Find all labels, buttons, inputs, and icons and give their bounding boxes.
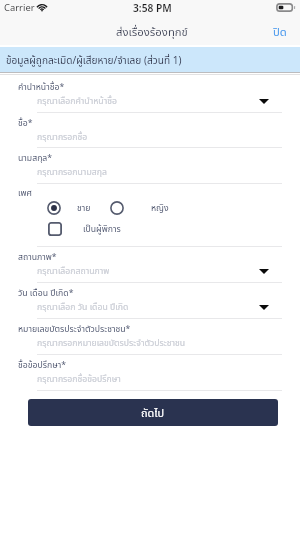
- other: Open picker: [259, 269, 269, 274]
- staticText: วัน เดือน ปีเกิด*: [18, 287, 74, 300]
- button[interactable]: ปิด: [264, 19, 300, 45]
- staticText: กรุณากรอกชื่อ: [37, 131, 88, 144]
- staticText: กรุณากรอกหมายเลขบัตรประจำตัวประชาชน: [37, 337, 186, 350]
- button[interactable]: สถานภาพ*: [0, 246, 300, 282]
- other: Open picker: [259, 305, 269, 310]
- button[interactable]: หญิง: [110, 201, 169, 215]
- button[interactable]: เป็นผู้พิการ: [48, 222, 121, 236]
- staticText: คำนำหน้าชื่อ*: [18, 81, 65, 94]
- staticText: กรุณาเลือก วัน เดือน ปีเกิด: [37, 301, 129, 314]
- button[interactable]: ชาย: [47, 201, 91, 215]
- button[interactable]: วัน เดือน ปีเกิด*: [0, 282, 300, 318]
- staticText: Carrier: [4, 1, 35, 14]
- button[interactable]: ชื่อ*: [0, 112, 300, 148]
- staticText: ชาย: [77, 202, 91, 215]
- staticText: เป็นผู้พิการ: [83, 223, 121, 236]
- other: Battery low: [276, 3, 296, 12]
- staticText: กรุณากรอกนามสกุล: [37, 166, 107, 179]
- staticText: ส่งเรื่องร้องทุกข์: [116, 24, 188, 41]
- button[interactable]: ถัดไป: [28, 399, 278, 426]
- staticText: กรุณาเลือกสถานภาพ: [37, 265, 110, 278]
- button[interactable]: หมายเลขบัตรประจำตัวประชาชน*: [0, 318, 300, 354]
- staticText: ชื่อ*: [18, 117, 33, 130]
- staticText: กรุณากรอกชื่อข้อปรึกษา: [37, 373, 121, 386]
- button[interactable]: นามสกุล*: [0, 147, 300, 183]
- button[interactable]: ชื่อข้อปรึกษา*: [0, 354, 300, 390]
- staticText: หมายเลขบัตรประจำตัวประชาชน*: [18, 323, 131, 336]
- staticText: นามสกุล*: [18, 152, 53, 165]
- staticText: สถานภาพ*: [18, 251, 57, 264]
- staticText: ปิด: [273, 24, 287, 40]
- staticText: กรุณาเลือกคำนำหน้าชื่อ: [37, 95, 117, 108]
- staticText: ชื่อข้อปรึกษา*: [18, 359, 67, 372]
- staticText: เพศ: [18, 187, 32, 200]
- staticText: 3:58 PM: [133, 1, 172, 15]
- other: Open picker: [259, 99, 269, 104]
- staticText: ถัดไป: [141, 405, 165, 421]
- other: Wi-Fi signal: [36, 3, 48, 12]
- staticText: หญิง: [151, 202, 169, 215]
- staticText: ข้อมูลผู้ถูกละเมิด/ผู้เสียหาย/จำเลย (ส่ว…: [6, 53, 182, 68]
- button[interactable]: คำนำหน้าชื่อ*: [0, 76, 300, 112]
